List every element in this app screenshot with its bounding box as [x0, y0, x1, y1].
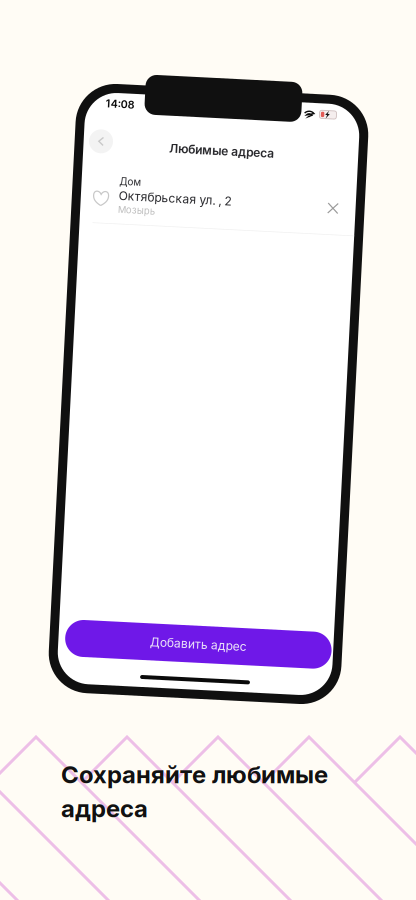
staticText: Мозырь	[109, 209, 146, 220]
button[interactable]: Добавить адрес	[78, 626, 344, 663]
staticText: Сохраняйте любимые	[61, 760, 328, 789]
staticText: Дом	[109, 180, 131, 192]
staticText: адреса	[61, 794, 148, 823]
staticText: Любимые адреса	[157, 143, 262, 158]
staticText: Добавить адрес	[163, 637, 260, 652]
button[interactable]: Back	[76, 135, 100, 159]
button[interactable]: Дом	[71, 98, 346, 238]
staticText: 14:08	[91, 102, 120, 115]
staticText: Октябрьская ул. , 2	[109, 193, 222, 208]
